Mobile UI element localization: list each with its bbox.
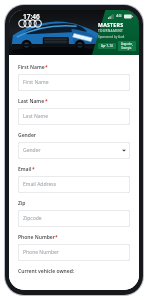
staticText: * — [55, 234, 58, 241]
button[interactable]: Gender — [18, 142, 130, 159]
staticText: Augusta, Georgia — [121, 42, 133, 50]
staticText: Phone Number — [23, 249, 59, 256]
staticText: Gender — [23, 147, 41, 154]
button[interactable]: Phone Number — [18, 244, 130, 261]
staticText: Email Address — [23, 181, 57, 188]
button[interactable]: Apr 7–14 — [98, 43, 116, 49]
staticText: * — [45, 64, 48, 71]
staticText: 4G — [116, 13, 122, 19]
staticText: First Name — [23, 79, 49, 86]
staticText: Last Name — [18, 98, 45, 105]
button[interactable]: First Name — [18, 74, 130, 91]
staticText: 17:46 — [23, 12, 40, 21]
other: Signal strength — [108, 14, 114, 19]
other: Battery — [124, 14, 133, 19]
staticText: * — [32, 166, 35, 173]
other: Open gender dropdown — [122, 149, 126, 152]
button[interactable]: Email Address — [18, 176, 130, 193]
staticText: Email — [18, 166, 32, 173]
button[interactable]: Zipcode — [18, 210, 130, 227]
staticText: Gender — [18, 132, 36, 139]
staticText: TOURNAMENT — [98, 29, 124, 33]
staticText: Zipcode — [23, 215, 42, 222]
staticText: Sponsored by Audi — [98, 35, 125, 39]
button[interactable]: Augusta, Georgia — [118, 41, 136, 51]
staticText: Current vehicle owned: — [18, 268, 75, 275]
staticText: Phone Number — [18, 234, 55, 241]
staticText: MASTERS — [98, 21, 124, 28]
button[interactable]: Last Name — [18, 108, 130, 125]
staticText: Last Name — [23, 113, 49, 120]
staticText: First Name — [18, 64, 45, 71]
staticText: Apr 7–14 — [101, 44, 113, 48]
staticText: Zip — [18, 200, 26, 207]
staticText: * — [45, 98, 48, 105]
